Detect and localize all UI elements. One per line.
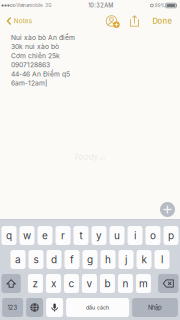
staticText: u (114, 229, 120, 242)
button[interactable]: a (10, 250, 25, 269)
staticText: Cơm chiên 25k (11, 52, 60, 60)
button[interactable]: l (154, 250, 169, 269)
staticText: z (32, 277, 38, 290)
button[interactable]: b (100, 274, 115, 293)
button[interactable]: g (82, 250, 97, 269)
staticText: Done (152, 16, 171, 26)
button[interactable]: 123 (2, 298, 23, 317)
staticText: d (51, 253, 57, 266)
button[interactable]: Notes (2, 11, 38, 31)
staticText: Notes (14, 17, 32, 25)
staticText: 0907128863 (11, 61, 50, 69)
button[interactable]: r (55, 226, 70, 245)
staticText: r (61, 229, 65, 242)
staticText: s (33, 253, 38, 266)
staticText: h (105, 253, 111, 266)
staticText: x (51, 277, 56, 290)
staticText: 6am-12am (11, 79, 45, 87)
staticText: w (23, 229, 31, 242)
staticText: Vietnamobile (15, 3, 42, 8)
staticText: g (87, 253, 93, 266)
button[interactable]: Share (123, 11, 145, 31)
staticText: t (79, 229, 82, 242)
button[interactable]: c (64, 274, 79, 293)
button[interactable]: m (136, 274, 151, 293)
button[interactable]: z (28, 274, 43, 293)
button[interactable] (26, 298, 43, 317)
button[interactable]: j (118, 250, 133, 269)
staticText: m (139, 277, 148, 290)
staticText: f (70, 253, 74, 266)
staticText: q (6, 229, 12, 242)
button[interactable]: d (46, 250, 61, 269)
button[interactable]: x (46, 274, 61, 293)
staticText: i (134, 229, 136, 242)
button[interactable]: f (64, 250, 79, 269)
button[interactable]: p (163, 226, 178, 245)
button[interactable]: e (37, 226, 52, 245)
button[interactable]: h (100, 250, 115, 269)
button[interactable] (46, 298, 63, 317)
button[interactable]: v (82, 274, 97, 293)
staticText: 99% (154, 3, 166, 8)
staticText: 123 (8, 304, 18, 311)
staticText: v (86, 277, 92, 290)
staticText: y (96, 229, 102, 242)
staticText: p (168, 229, 174, 242)
staticText: c (68, 277, 74, 290)
staticText: a (15, 253, 21, 266)
button[interactable]: Nhập (132, 298, 178, 317)
staticText: 10:32 AM (88, 2, 113, 9)
staticText: b (104, 277, 110, 290)
button[interactable] (1, 274, 21, 293)
button[interactable] (158, 274, 178, 293)
button[interactable]: u (109, 226, 124, 245)
staticText: dấu cách (86, 304, 109, 311)
staticText: e (42, 229, 48, 242)
staticText: l (161, 253, 163, 266)
button[interactable]: w (19, 226, 34, 245)
button[interactable]: q (1, 226, 16, 245)
staticText: Nui xào bò An điềm (11, 33, 75, 42)
staticText: j (125, 253, 127, 266)
button[interactable]: i (127, 226, 142, 245)
staticText: o (150, 229, 156, 242)
button[interactable]: dấu cách (66, 298, 129, 317)
button[interactable]: s (28, 250, 43, 269)
button[interactable]: n (118, 274, 133, 293)
button[interactable]: Done (145, 11, 177, 31)
staticText: 3G (42, 3, 51, 8)
staticText: n (122, 277, 128, 290)
button[interactable]: k (136, 250, 151, 269)
staticText: Foody (75, 152, 98, 162)
staticText: Nhập (148, 304, 162, 311)
button[interactable]: t (73, 226, 88, 245)
button[interactable]: y (91, 226, 106, 245)
button[interactable]: o (145, 226, 160, 245)
staticText: 44-46 An Điềm q5 (11, 70, 70, 78)
staticText: 30k nui xào bò (11, 43, 59, 51)
button[interactable]: Add People (99, 11, 123, 31)
staticText: k (141, 253, 146, 266)
